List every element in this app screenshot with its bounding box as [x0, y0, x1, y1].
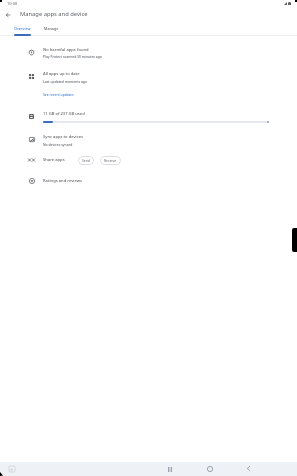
button[interactable]: Screenshot [7, 464, 16, 473]
button[interactable]: Overview [8, 24, 37, 36]
staticText: Manage apps and device [20, 10, 88, 18]
button[interactable]: Ratings and reviews [43, 178, 83, 184]
staticText: Overview [14, 26, 31, 31]
button[interactable]: Manage [39, 24, 63, 36]
staticText: No devices synced [43, 142, 73, 147]
button[interactable]: 11 GB of 237 GB used [43, 111, 85, 117]
button[interactable]: See recent updates [43, 92, 74, 97]
button[interactable]: Recent apps [163, 463, 176, 476]
staticText: Manage [44, 26, 59, 31]
staticText: 10:08 [7, 1, 18, 6]
button[interactable]: Home [203, 462, 216, 475]
staticText: Send [82, 158, 90, 163]
button[interactable]: Receive [100, 156, 121, 165]
button[interactable]: Back [242, 462, 255, 475]
button[interactable]: All apps up to date [43, 71, 80, 77]
button[interactable]: Back [1, 8, 15, 22]
button[interactable]: No harmful apps found [43, 47, 89, 53]
staticText: Share apps [43, 157, 65, 163]
button[interactable]: Send [78, 156, 94, 165]
staticText: Receive [104, 158, 117, 163]
button[interactable]: Sync apps to devices [43, 134, 84, 140]
staticText: Play Protect scanned 50 minutes ago [43, 54, 102, 59]
staticText: Last updated moments ago [43, 79, 87, 84]
